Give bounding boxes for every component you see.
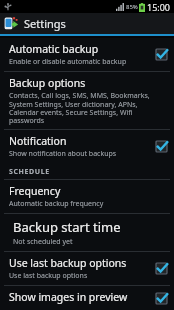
staticText: Backup start time bbox=[13, 218, 121, 236]
staticText: Settings bbox=[24, 16, 66, 31]
staticText: Notification bbox=[9, 134, 67, 148]
other: App icon bbox=[4, 16, 19, 31]
staticText: Not scheduled yet bbox=[13, 237, 73, 247]
button[interactable]: App icon bbox=[0, 13, 174, 34]
staticText: Use last backup options bbox=[9, 256, 127, 270]
button[interactable]: Frequency bbox=[0, 180, 174, 213]
button[interactable]: Checked bbox=[155, 140, 168, 153]
staticText: Contacts, Call logs, SMS, MMS, Bookmarks… bbox=[9, 91, 168, 125]
button[interactable]: Backup options bbox=[0, 72, 174, 129]
button[interactable]: Backup start time bbox=[0, 214, 174, 251]
staticText: Frequency bbox=[9, 184, 61, 198]
staticText: Automatic backup frequency bbox=[9, 199, 104, 209]
staticText: Show notification about backups bbox=[9, 149, 117, 159]
button[interactable]: Notification bbox=[0, 130, 174, 163]
button[interactable]: Checked bbox=[155, 292, 168, 305]
staticText: 85% bbox=[126, 3, 138, 11]
button[interactable]: Checked bbox=[155, 262, 168, 275]
button[interactable]: Show images in preview bbox=[0, 286, 174, 310]
button[interactable]: Automatic backup bbox=[0, 38, 174, 71]
staticText: SCHEDULE bbox=[9, 167, 50, 177]
staticText: Enable or disable automatic backup bbox=[9, 57, 127, 67]
staticText: 15:00 bbox=[147, 1, 171, 13]
staticText: Backup options bbox=[9, 76, 86, 90]
staticText: Show images in preview bbox=[9, 290, 128, 304]
button[interactable]: Checked bbox=[155, 48, 168, 61]
staticText: Use last backup options bbox=[9, 271, 88, 281]
button[interactable]: Use last backup options bbox=[0, 252, 174, 285]
staticText: Automatic backup bbox=[9, 42, 99, 56]
